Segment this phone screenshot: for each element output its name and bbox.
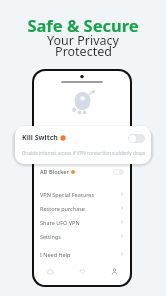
button[interactable]: VPN Special Features [34, 187, 130, 201]
staticText: Your Privacy [47, 32, 119, 49]
staticText: Safe & Secure [27, 14, 139, 36]
button[interactable]: Restore purchase [34, 201, 130, 215]
staticText: Kill Switch [22, 133, 58, 143]
button[interactable]: Kill Switch [15, 126, 151, 164]
button[interactable]: Kill switch toggle [128, 134, 145, 143]
button[interactable]: AD Blocker [34, 165, 130, 178]
staticText: Protected [55, 43, 112, 60]
button[interactable]: I Need Help [34, 247, 130, 261]
button[interactable]: Settings [34, 229, 130, 243]
button[interactable]: Share UFO VPN [34, 215, 130, 229]
staticText: AD Blocker [40, 168, 69, 175]
staticText: Share UFO VPN [40, 219, 80, 226]
staticText: I Need Help [40, 251, 71, 258]
staticText: Settings [40, 233, 61, 240]
staticText: Disable internet access if VPN connectio… [22, 150, 146, 156]
button[interactable]: Favorites [66, 264, 98, 278]
button[interactable]: AD Blocker toggle [113, 169, 124, 175]
staticText: Restore purchase [40, 205, 85, 212]
button[interactable]: Profile [98, 264, 130, 278]
staticText: VPN Special Features [40, 191, 95, 198]
button[interactable]: Home [34, 264, 66, 278]
